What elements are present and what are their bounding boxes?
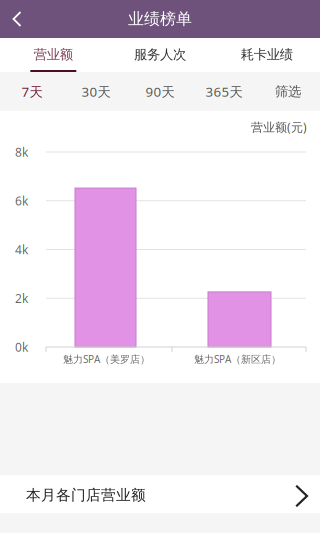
staticText: 30天	[81, 83, 110, 100]
staticText: 本月各门店营业额	[26, 486, 146, 504]
staticText: 筛选	[275, 83, 301, 100]
staticText: 7天	[21, 83, 42, 100]
button[interactable]: 7天	[0, 72, 64, 111]
button[interactable]: Back	[0, 0, 57, 38]
staticText: 90天	[145, 83, 174, 100]
button[interactable]: 营业额	[0, 38, 107, 72]
staticText: 2k	[15, 290, 28, 306]
staticText: 魅力SPA（新区店）	[194, 352, 281, 366]
staticText: 营业额(元)	[251, 119, 307, 135]
staticText: 魅力SPA（美罗店）	[63, 352, 150, 366]
button[interactable]: 30天	[64, 72, 128, 111]
staticText: 6k	[15, 193, 28, 209]
staticText: 营业额	[34, 46, 73, 63]
button[interactable]: 耗卡业绩	[213, 38, 320, 72]
staticText: 业绩榜单	[128, 9, 192, 29]
staticText: 8k	[15, 144, 28, 160]
button[interactable]: 365天	[192, 72, 256, 111]
staticText: 4k	[15, 241, 28, 257]
staticText: 0k	[15, 339, 28, 355]
button[interactable]: 筛选	[256, 72, 320, 111]
button[interactable]: 服务人次	[107, 38, 213, 72]
staticText: 耗卡业绩	[241, 46, 293, 63]
staticText: 服务人次	[134, 46, 186, 63]
button[interactable]: 本月各门店营业额	[0, 475, 320, 513]
staticText: 365天	[205, 83, 242, 100]
button[interactable]: 90天	[128, 72, 192, 111]
